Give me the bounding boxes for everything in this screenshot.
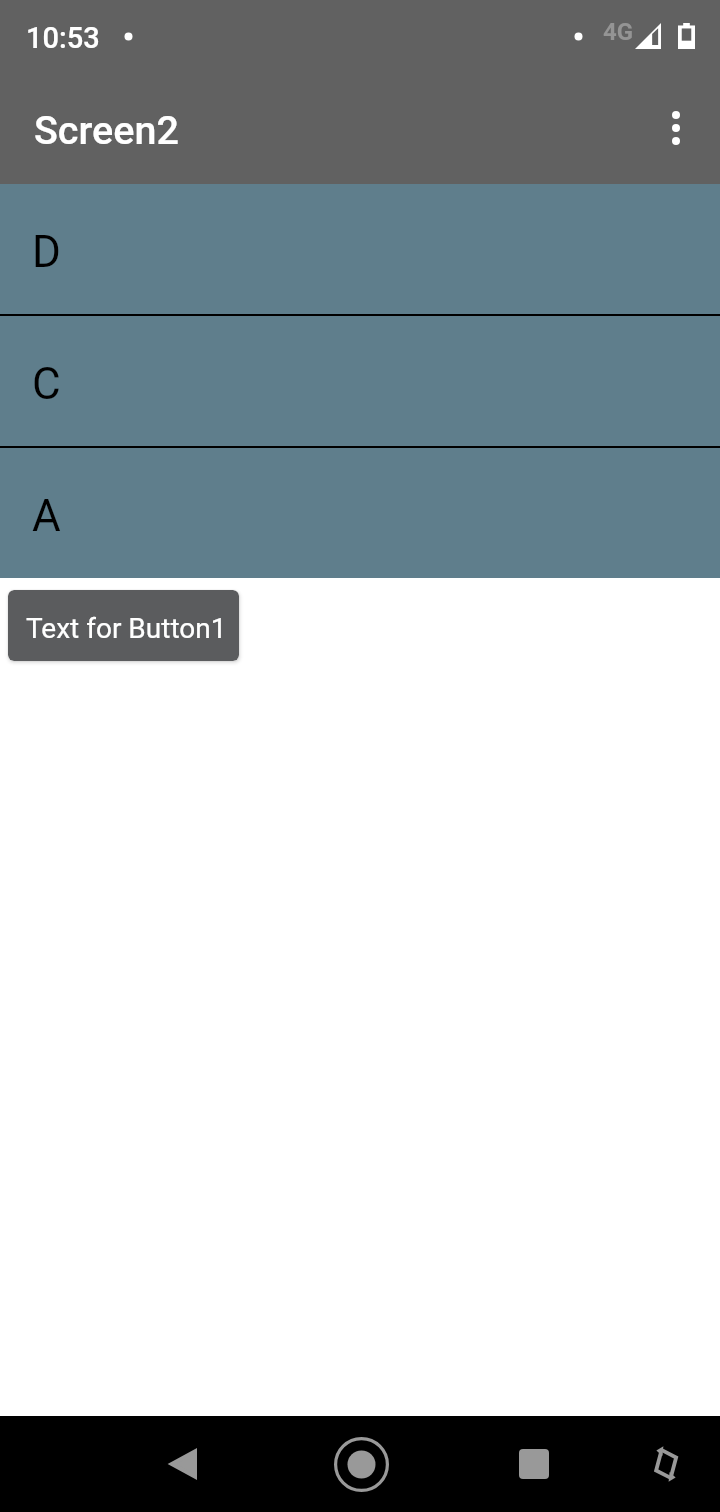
button[interactable]: Recent apps xyxy=(486,1416,582,1512)
staticText: C xyxy=(32,358,61,410)
staticText: 4G xyxy=(603,18,634,46)
button[interactable]: Text for Button1 xyxy=(8,590,239,661)
staticText: Screen2 xyxy=(34,107,179,153)
button[interactable]: Back xyxy=(135,1416,231,1512)
staticText: A xyxy=(32,490,61,542)
button[interactable]: More options xyxy=(644,99,708,163)
button[interactable]: D xyxy=(0,184,720,314)
button[interactable]: C xyxy=(0,316,720,446)
button[interactable]: A xyxy=(0,448,720,578)
staticText: 10:53 xyxy=(26,21,100,55)
button[interactable]: Rotate screen xyxy=(618,1416,714,1512)
button[interactable]: Home xyxy=(313,1416,409,1512)
staticText: D xyxy=(32,226,61,278)
staticText: Text for Button1 xyxy=(26,612,227,645)
